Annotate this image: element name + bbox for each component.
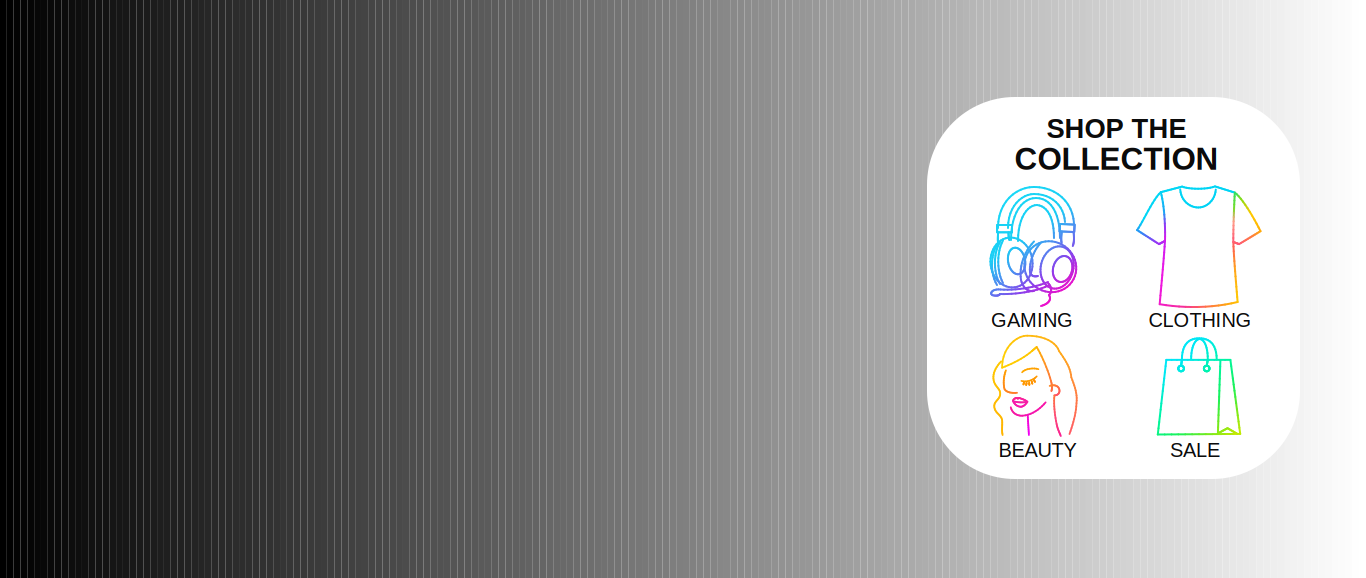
staticText: SALE: [1170, 439, 1220, 461]
staticText: GAMING: [991, 309, 1073, 331]
staticText: CLOTHING: [1148, 309, 1251, 331]
button[interactable]: CLOTHING: [0, 0, 1366, 578]
staticText: SHOP THE: [1046, 113, 1186, 144]
button[interactable]: BEAUTY: [0, 0, 1366, 578]
staticText: BEAUTY: [998, 439, 1076, 461]
staticText: COLLECTION: [1014, 141, 1218, 176]
button[interactable]: SALE: [0, 0, 1366, 578]
button[interactable]: GAMING: [0, 0, 1366, 578]
